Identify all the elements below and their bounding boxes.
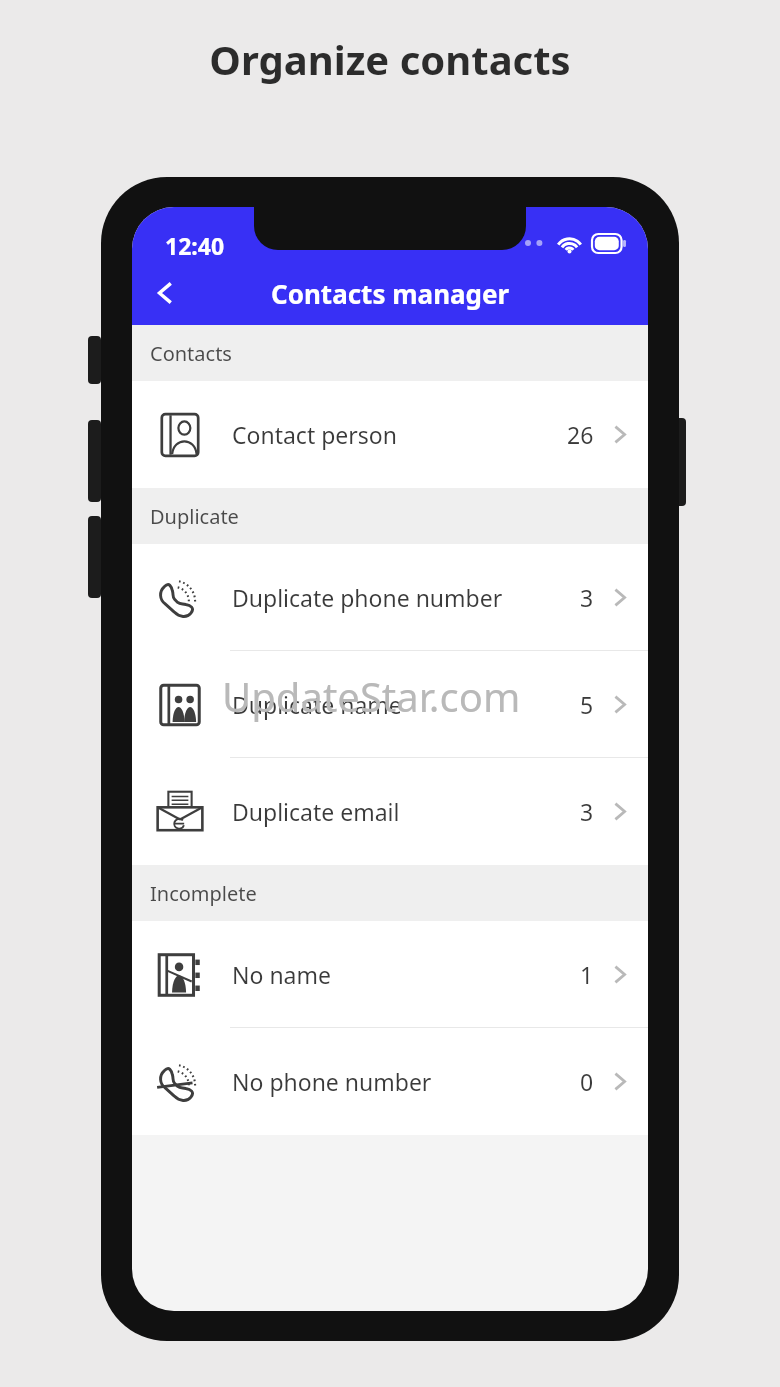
staticText: UpdateStar.com <box>222 669 521 723</box>
button[interactable]: Duplicate name <box>132 651 648 758</box>
staticText: 1 <box>580 959 594 990</box>
staticText: 5 <box>580 689 594 720</box>
staticText: 0 <box>580 1066 594 1097</box>
staticText: Contacts manager <box>271 276 510 311</box>
button[interactable]: Duplicate phone number <box>132 544 648 651</box>
staticText: 3 <box>580 582 594 613</box>
staticText: Duplicate name <box>232 689 402 720</box>
staticText: Duplicate <box>150 503 239 530</box>
staticText: Organize contacts <box>0 32 780 86</box>
staticText: Duplicate email <box>232 796 400 827</box>
staticText: Duplicate phone number <box>232 582 503 613</box>
button[interactable]: No name <box>132 921 648 1028</box>
button[interactable]: Back <box>136 264 194 322</box>
staticText: No phone number <box>232 1066 432 1097</box>
staticText: 3 <box>580 796 594 827</box>
button[interactable]: Contact person <box>132 381 648 488</box>
staticText: No name <box>232 959 331 990</box>
button[interactable]: Duplicate email <box>132 758 648 865</box>
button[interactable]: No phone number <box>132 1028 648 1135</box>
staticText: Contact person <box>232 419 397 450</box>
staticText: Contacts <box>150 340 232 367</box>
staticText: 12:40 <box>165 230 225 261</box>
staticText: Incomplete <box>150 880 257 907</box>
staticText: 26 <box>567 419 594 450</box>
